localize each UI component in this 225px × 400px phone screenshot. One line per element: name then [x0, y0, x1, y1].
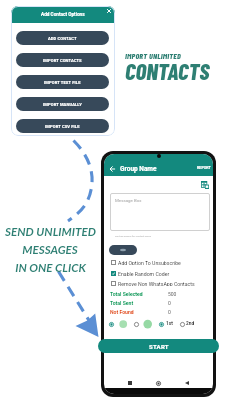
button[interactable]: START [98, 339, 219, 353]
staticText: ADD CONTACT [48, 36, 77, 41]
staticText: Group Name [120, 165, 157, 173]
staticText: will tag #name for contact name [115, 235, 152, 238]
button[interactable]: Close [105, 7, 113, 15]
staticText: IMPORT CSV FILE [45, 124, 80, 129]
staticText: Total Sent [110, 300, 134, 306]
staticText: CONTACTS [125, 57, 210, 85]
staticText: MESSAGES [22, 243, 78, 257]
staticText: IMPORT CONTACTS [43, 58, 82, 63]
button[interactable]: ADD CONTACT [16, 31, 109, 45]
staticText: Add Option To Unsubscribe [118, 260, 181, 265]
staticText: SEND UNLIMITED [5, 225, 96, 239]
button[interactable]: Back [108, 165, 117, 173]
button[interactable]: Option [180, 322, 185, 327]
button[interactable]: Option [134, 322, 139, 327]
staticText: 1st [166, 321, 173, 327]
staticText: Remove Non WhatsApp Contacts [118, 281, 195, 286]
button[interactable]: Option [109, 322, 114, 327]
staticText: START [149, 343, 169, 350]
staticText: 500 [168, 291, 177, 297]
button[interactable]: Message Box [110, 193, 210, 231]
button[interactable]: REPORT [197, 166, 211, 170]
button[interactable]: Remove Non WhatsApp Contacts [111, 281, 195, 286]
staticText: IMPORT UNLIMITED [125, 51, 181, 61]
staticText: IMPORT MANUALLY [43, 102, 82, 107]
button[interactable]: Add Option To Unsubscribe [111, 260, 181, 265]
button[interactable]: Import from spreadsheet [201, 181, 209, 189]
button[interactable]: IMPORT CSV FILE [16, 119, 109, 133]
staticText: 0 [168, 309, 171, 315]
button[interactable]: Enable Random Coder [111, 271, 170, 276]
staticText: 2nd [186, 321, 195, 327]
staticText: Add Contact Options [41, 12, 85, 18]
button[interactable]: IMPORT CONTACTS [16, 53, 109, 67]
button[interactable]: IMPORT TEXT FILE [16, 75, 109, 89]
staticText: Not Found [110, 309, 134, 315]
staticText: 0 [168, 300, 171, 306]
button[interactable]: IMPORT MANUALLY [16, 97, 109, 111]
staticText: Enable Random Coder [118, 271, 170, 276]
button[interactable]: Attach media [109, 245, 137, 255]
button[interactable]: Option [159, 322, 164, 327]
staticText: IMPORT TEXT FILE [44, 80, 81, 85]
staticText: Message Box [115, 198, 142, 203]
staticText: Total Selected [110, 291, 143, 297]
staticText: IN ONE CLICK [15, 261, 86, 275]
